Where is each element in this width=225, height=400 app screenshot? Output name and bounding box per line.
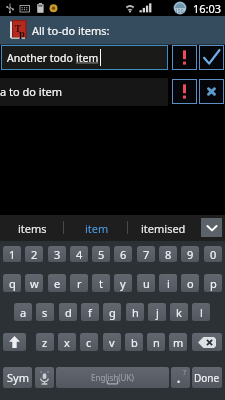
- button[interactable]: m: [169, 333, 187, 351]
- staticText: T: [15, 22, 21, 34]
- button[interactable]: z: [36, 333, 54, 351]
- staticText: z: [42, 335, 48, 350]
- button[interactable]: 9: [181, 246, 199, 262]
- staticText: r: [77, 276, 82, 291]
- staticText: 8: [165, 247, 172, 262]
- button[interactable]: Voice input: [35, 367, 54, 388]
- staticText: 1: [9, 247, 16, 262]
- staticText: item: [76, 51, 99, 65]
- button[interactable]: 7: [137, 246, 155, 262]
- staticText: items: [18, 221, 47, 236]
- button[interactable]: itemised: [128, 215, 198, 241]
- staticText: ?: [183, 368, 187, 378]
- button[interactable]: v: [103, 333, 121, 351]
- button[interactable]: item: [65, 215, 129, 241]
- staticText: y: [120, 276, 126, 291]
- button[interactable]: w: [25, 274, 43, 292]
- button[interactable]: 3: [48, 246, 66, 262]
- staticText: o: [187, 276, 194, 291]
- staticText: a to do item: [0, 84, 63, 99]
- button[interactable]: Sym: [3, 367, 32, 388]
- button[interactable]: n: [147, 333, 165, 351]
- button[interactable]: o: [181, 274, 199, 292]
- button[interactable]: r: [70, 274, 88, 292]
- staticText: 6: [120, 247, 127, 262]
- button[interactable]: 4: [70, 246, 88, 262]
- staticText: English(UK): [91, 372, 134, 383]
- button[interactable]: h: [126, 303, 144, 321]
- staticText: Done: [194, 371, 220, 385]
- staticText: a: [20, 305, 27, 320]
- button[interactable]: Save item: [199, 45, 224, 70]
- staticText: w: [30, 276, 39, 291]
- staticText: t: [99, 276, 103, 291]
- button[interactable]: y: [114, 274, 132, 292]
- staticText: Sym: [7, 370, 29, 385]
- staticText: l: [200, 305, 203, 320]
- staticText: b: [131, 335, 138, 350]
- button[interactable]: e: [48, 274, 66, 292]
- button[interactable]: c: [80, 333, 98, 351]
- button[interactable]: 0: [204, 246, 222, 262]
- staticText: g: [109, 305, 116, 320]
- button[interactable]: T: [0, 16, 225, 44]
- staticText: j: [156, 305, 159, 320]
- staticText: 7: [143, 247, 150, 262]
- button[interactable]: 5: [92, 246, 110, 262]
- staticText: f: [88, 305, 92, 320]
- button[interactable]: l: [192, 303, 210, 321]
- staticText: All to-do items:: [32, 23, 110, 38]
- button[interactable]: Another todo: [1, 45, 168, 70]
- button[interactable]: Set priority: [172, 79, 197, 104]
- staticText: item: [85, 221, 109, 236]
- button[interactable]: t: [92, 274, 110, 292]
- button[interactable]: 2: [25, 246, 43, 262]
- button[interactable]: Shift: [3, 333, 26, 351]
- button[interactable]: 6: [114, 246, 132, 262]
- staticText: s: [42, 305, 48, 320]
- button[interactable]: Delete item: [199, 79, 224, 104]
- staticText: h: [132, 305, 139, 320]
- staticText: i: [167, 276, 170, 291]
- button[interactable]: b: [125, 333, 143, 351]
- button[interactable]: d: [59, 303, 77, 321]
- button[interactable]: More suggestions: [201, 218, 222, 237]
- button[interactable]: s: [36, 303, 54, 321]
- staticText: n: [153, 335, 160, 350]
- staticText: 3: [54, 247, 61, 262]
- staticText: 2: [31, 247, 38, 262]
- button[interactable]: Set priority: [172, 45, 197, 70]
- staticText: c: [86, 335, 92, 350]
- button[interactable]: items: [0, 215, 64, 241]
- button[interactable]: i: [159, 274, 177, 292]
- staticText: p: [19, 27, 25, 39]
- button[interactable]: g: [103, 303, 121, 321]
- staticText: k: [176, 305, 182, 320]
- button[interactable]: a to do item: [0, 78, 168, 106]
- staticText: x: [64, 335, 70, 350]
- button[interactable]: x: [58, 333, 76, 351]
- button[interactable]: p: [204, 274, 222, 292]
- button[interactable]: 1: [3, 246, 21, 262]
- staticText: d: [65, 305, 72, 320]
- staticText: itemised: [141, 221, 186, 236]
- button[interactable]: Space: [56, 367, 169, 388]
- button[interactable]: q: [3, 274, 21, 292]
- staticText: u: [143, 276, 150, 291]
- button[interactable]: j: [148, 303, 166, 321]
- button[interactable]: f: [81, 303, 99, 321]
- button[interactable]: k: [170, 303, 188, 321]
- button[interactable]: u: [137, 274, 155, 292]
- staticText: 0: [210, 247, 217, 262]
- button[interactable]: Period: [171, 367, 190, 388]
- staticText: 16:03: [193, 1, 222, 16]
- staticText: q: [9, 276, 16, 291]
- staticText: 9: [187, 247, 194, 262]
- staticText: p: [210, 276, 217, 291]
- button[interactable]: 8: [159, 246, 177, 262]
- staticText: e: [54, 276, 61, 291]
- button[interactable]: Done: [192, 367, 222, 388]
- staticText: m: [173, 335, 184, 350]
- button[interactable]: Backspace: [192, 333, 222, 351]
- button[interactable]: a: [14, 303, 32, 321]
